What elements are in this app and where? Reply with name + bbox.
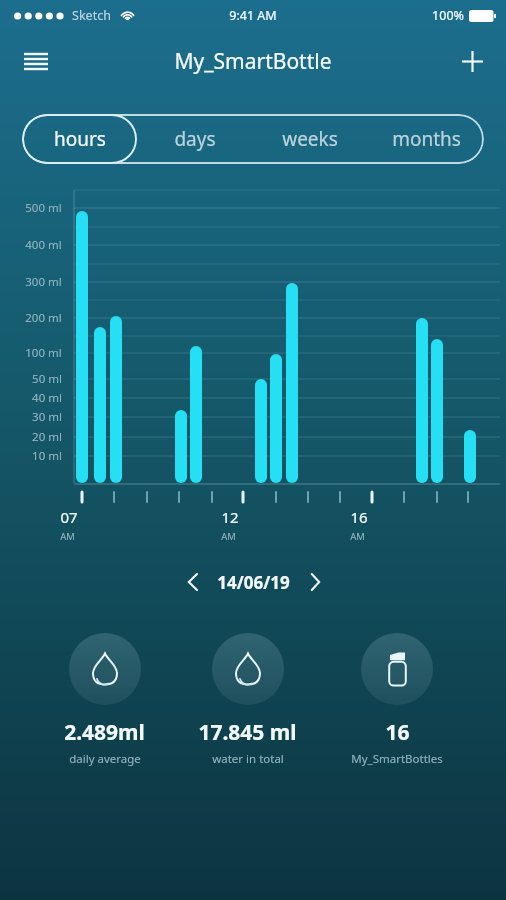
staticText: 400 ml (25, 237, 62, 253)
staticText: 40 ml (32, 390, 62, 406)
staticText: 12 (221, 507, 239, 527)
staticText: 500 ml (25, 200, 62, 216)
staticText: AM (60, 530, 75, 543)
button[interactable]: Menu (14, 39, 58, 83)
staticText: 16 (350, 507, 368, 527)
staticText: AM (350, 530, 365, 543)
staticText: 17.845 ml (198, 718, 297, 747)
staticText: 100% (432, 7, 464, 24)
button[interactable]: Next day (298, 565, 332, 599)
staticText: daily average (69, 751, 141, 767)
staticText: 300 ml (25, 274, 62, 290)
button[interactable]: Previous day (175, 565, 209, 599)
staticText: Sketch (72, 7, 111, 24)
button[interactable]: months (368, 114, 484, 164)
staticText: water in total (212, 751, 284, 767)
button[interactable]: 16 (351, 633, 443, 767)
staticText: days (174, 126, 216, 152)
staticText: 07 (60, 507, 78, 527)
staticText: 100 ml (25, 345, 62, 361)
staticText: AM (221, 530, 236, 543)
staticText: My_SmartBottle (174, 47, 332, 76)
button[interactable]: weeks (252, 114, 368, 164)
button[interactable]: Add (450, 39, 494, 83)
staticText: 30 ml (32, 409, 62, 425)
staticText: 50 ml (32, 371, 62, 387)
staticText: 14/06/19 (217, 571, 290, 594)
staticText: 9:41 AM (229, 7, 277, 24)
staticText: 16 (385, 718, 410, 747)
staticText: 20 ml (32, 429, 62, 445)
button[interactable]: 2.489ml (64, 633, 145, 767)
button[interactable]: 17.845 ml (198, 633, 297, 767)
staticText: My_SmartBottles (351, 751, 443, 767)
staticText: weeks (282, 126, 338, 152)
button[interactable]: hours (22, 114, 137, 164)
button[interactable]: days (137, 114, 252, 164)
staticText: hours (54, 126, 106, 152)
button[interactable]: 14/06/19 (217, 571, 290, 594)
staticText: months (392, 126, 461, 152)
staticText: 10 ml (32, 448, 62, 464)
staticText: 2.489ml (64, 718, 145, 747)
staticText: 200 ml (25, 310, 62, 326)
